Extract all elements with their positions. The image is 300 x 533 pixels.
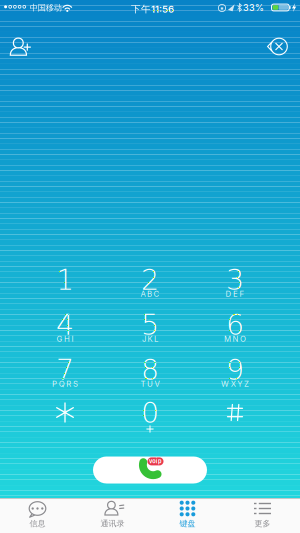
staticText: 4 xyxy=(56,308,74,342)
staticText: 2 xyxy=(141,263,159,297)
button[interactable]: 9 xyxy=(193,354,277,399)
button[interactable]: Call xyxy=(93,456,207,483)
staticText: X xyxy=(231,379,236,389)
button[interactable]: 8 xyxy=(108,354,192,399)
button[interactable]: Add Contact xyxy=(3,29,39,65)
button[interactable]: 通讯录 xyxy=(75,498,150,533)
staticText: 33% xyxy=(243,2,264,13)
staticText: P xyxy=(52,379,57,389)
button[interactable]: 2 xyxy=(108,264,192,309)
staticText: M xyxy=(224,334,231,344)
staticText: 6 xyxy=(226,308,244,342)
button[interactable]: 键盘 xyxy=(150,498,225,533)
staticText: S xyxy=(73,379,78,389)
staticText: B xyxy=(147,289,152,299)
button[interactable]: 5 xyxy=(108,309,192,354)
staticText: N xyxy=(232,334,238,344)
staticText: R xyxy=(66,379,71,389)
staticText: U xyxy=(147,379,153,389)
staticText: 5 xyxy=(141,308,159,342)
staticText: K xyxy=(147,334,152,344)
button[interactable]: 1 xyxy=(23,264,107,309)
staticText: 7 xyxy=(56,353,74,387)
button[interactable]: 7 xyxy=(23,354,107,399)
staticText: J xyxy=(142,334,146,344)
staticText: Z xyxy=(244,379,249,389)
staticText: i xyxy=(156,458,158,465)
staticText: D xyxy=(225,289,231,299)
button[interactable]: 3 xyxy=(193,264,277,309)
button[interactable]: 更多 xyxy=(225,498,300,533)
button[interactable]: 0 xyxy=(108,397,192,442)
button[interactable]: 6 xyxy=(193,309,277,354)
staticText: W xyxy=(221,379,229,389)
staticText: Y xyxy=(237,379,242,389)
staticText: T xyxy=(140,379,145,389)
staticText: E xyxy=(233,289,238,299)
staticText: G xyxy=(56,334,62,344)
staticText: 8 xyxy=(141,353,159,387)
staticText: 键盘 xyxy=(179,518,195,529)
staticText: O xyxy=(240,334,246,344)
staticText: p xyxy=(158,458,162,465)
staticText: 更多 xyxy=(254,518,270,529)
staticText: 通讯录 xyxy=(100,518,124,529)
staticText: 3 xyxy=(226,263,244,297)
staticText: 0 xyxy=(141,396,159,430)
staticText: I xyxy=(72,334,74,344)
staticText: Q xyxy=(59,379,65,389)
staticText: 信息 xyxy=(29,518,45,529)
staticText: C xyxy=(154,289,160,299)
staticText: F xyxy=(240,289,245,299)
button[interactable]: # xyxy=(193,397,277,442)
staticText: o xyxy=(152,458,155,465)
button[interactable]: Delete xyxy=(261,28,297,64)
staticText: L xyxy=(154,334,158,344)
button[interactable]: * xyxy=(23,397,107,442)
staticText: 9 xyxy=(226,353,244,387)
button[interactable]: 信息 xyxy=(0,498,75,533)
staticText: A xyxy=(140,289,145,299)
staticText: 下午11:56 xyxy=(131,3,174,15)
staticText: 中国移动 xyxy=(30,3,62,13)
staticText: V xyxy=(155,379,160,389)
button[interactable]: 4 xyxy=(23,309,107,354)
staticText: v xyxy=(149,458,152,465)
staticText: H xyxy=(64,334,70,344)
staticText: 1 xyxy=(56,263,74,297)
